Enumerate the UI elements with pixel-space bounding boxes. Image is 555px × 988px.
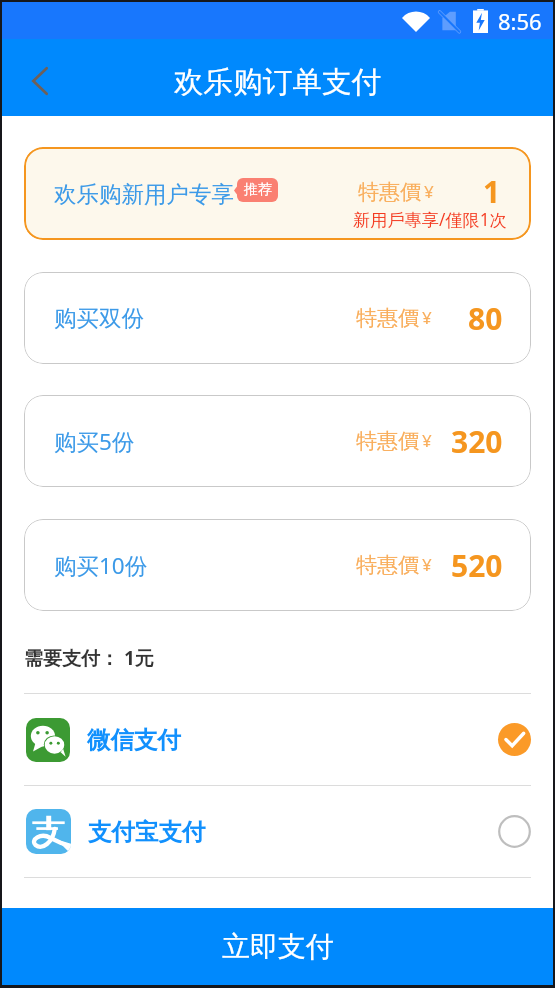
button[interactable]: Back [2,42,78,119]
staticText: 520 [451,545,503,586]
staticText: 特惠價 [356,552,419,578]
button[interactable]: 购买10份 [24,519,531,611]
staticText: ¥ [422,553,432,576]
staticText: 特惠價 [356,305,419,331]
staticText: 购买10份 [54,550,148,581]
staticText: ¥ [424,180,434,203]
staticText: ¥ [422,429,432,452]
staticText: 欢乐购新用户专享 [54,180,234,208]
button[interactable]: 购买双份 [24,272,531,364]
button[interactable]: 欢乐购新用户专享 [24,147,531,240]
staticText: 1 [483,171,501,212]
staticText: 推荐 [244,181,272,199]
staticText: 购买双份 [54,304,144,332]
staticText: 需要支付： 1元 [24,645,154,671]
button[interactable]: 支付宝支付 [2,786,553,877]
staticText: 特惠價 [356,428,419,454]
button[interactable]: 微信支付 [2,694,553,785]
staticText: 立即支付 [222,929,334,964]
staticText: 微信支付 [87,725,181,755]
staticText: 购买5份 [54,426,135,457]
staticText: 320 [451,421,503,462]
staticText: ¥ [422,306,432,329]
staticText: 欢乐购订单支付 [174,63,382,100]
staticText: 新用戶專享/僅限1次 [353,208,507,231]
staticText: 特惠價 [358,179,421,205]
button[interactable]: 立即支付 [2,908,553,985]
staticText: 80 [468,298,503,339]
staticText: 支付宝支付 [88,817,206,847]
staticText: 8:56 [498,6,542,36]
button[interactable]: 购买5份 [24,395,531,487]
